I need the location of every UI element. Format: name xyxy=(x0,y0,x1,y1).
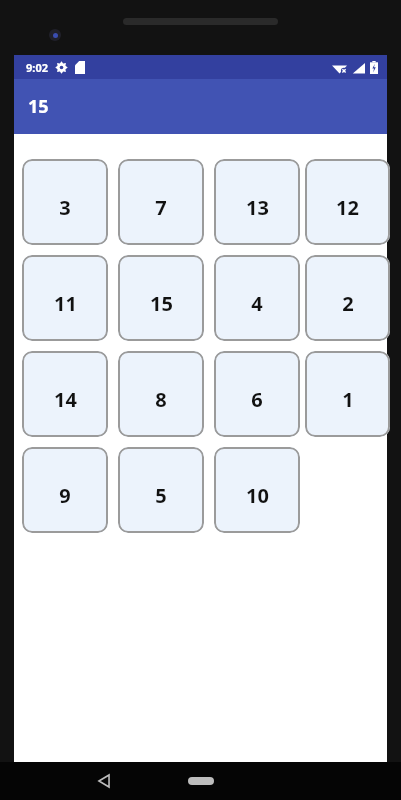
staticText: 7 xyxy=(155,194,167,221)
staticText: 6 xyxy=(251,386,263,413)
button[interactable]: 13 xyxy=(214,159,300,245)
button[interactable]: Back xyxy=(87,764,121,798)
button[interactable]: 6 xyxy=(214,351,300,437)
button[interactable]: 5 xyxy=(118,447,204,533)
button[interactable]: 14 xyxy=(22,351,108,437)
staticText: 10 xyxy=(246,482,269,509)
staticText: 9 xyxy=(59,482,71,509)
staticText: 14 xyxy=(54,386,77,413)
staticText: 15 xyxy=(28,94,49,119)
staticText: 13 xyxy=(246,194,269,221)
button[interactable]: 11 xyxy=(22,255,108,341)
staticText: 9:02 xyxy=(26,60,48,75)
staticText: 1 xyxy=(342,386,354,413)
staticText: 2 xyxy=(342,290,354,317)
staticText: 8 xyxy=(155,386,167,413)
staticText: 3 xyxy=(59,194,71,221)
button[interactable]: 12 xyxy=(305,159,390,245)
button[interactable]: 4 xyxy=(214,255,300,341)
button[interactable]: 8 xyxy=(118,351,204,437)
button[interactable]: 7 xyxy=(118,159,204,245)
button[interactable]: 9 xyxy=(22,447,108,533)
staticText: 11 xyxy=(54,290,77,317)
staticText: 5 xyxy=(155,482,167,509)
button[interactable]: Home xyxy=(178,768,224,794)
button[interactable]: 10 xyxy=(214,447,300,533)
button[interactable]: 15 xyxy=(118,255,204,341)
button[interactable]: 1 xyxy=(305,351,390,437)
button[interactable]: 3 xyxy=(22,159,108,245)
staticText: 4 xyxy=(251,290,263,317)
button[interactable]: 2 xyxy=(305,255,390,341)
staticText: 12 xyxy=(336,194,359,221)
staticText: 15 xyxy=(150,290,173,317)
